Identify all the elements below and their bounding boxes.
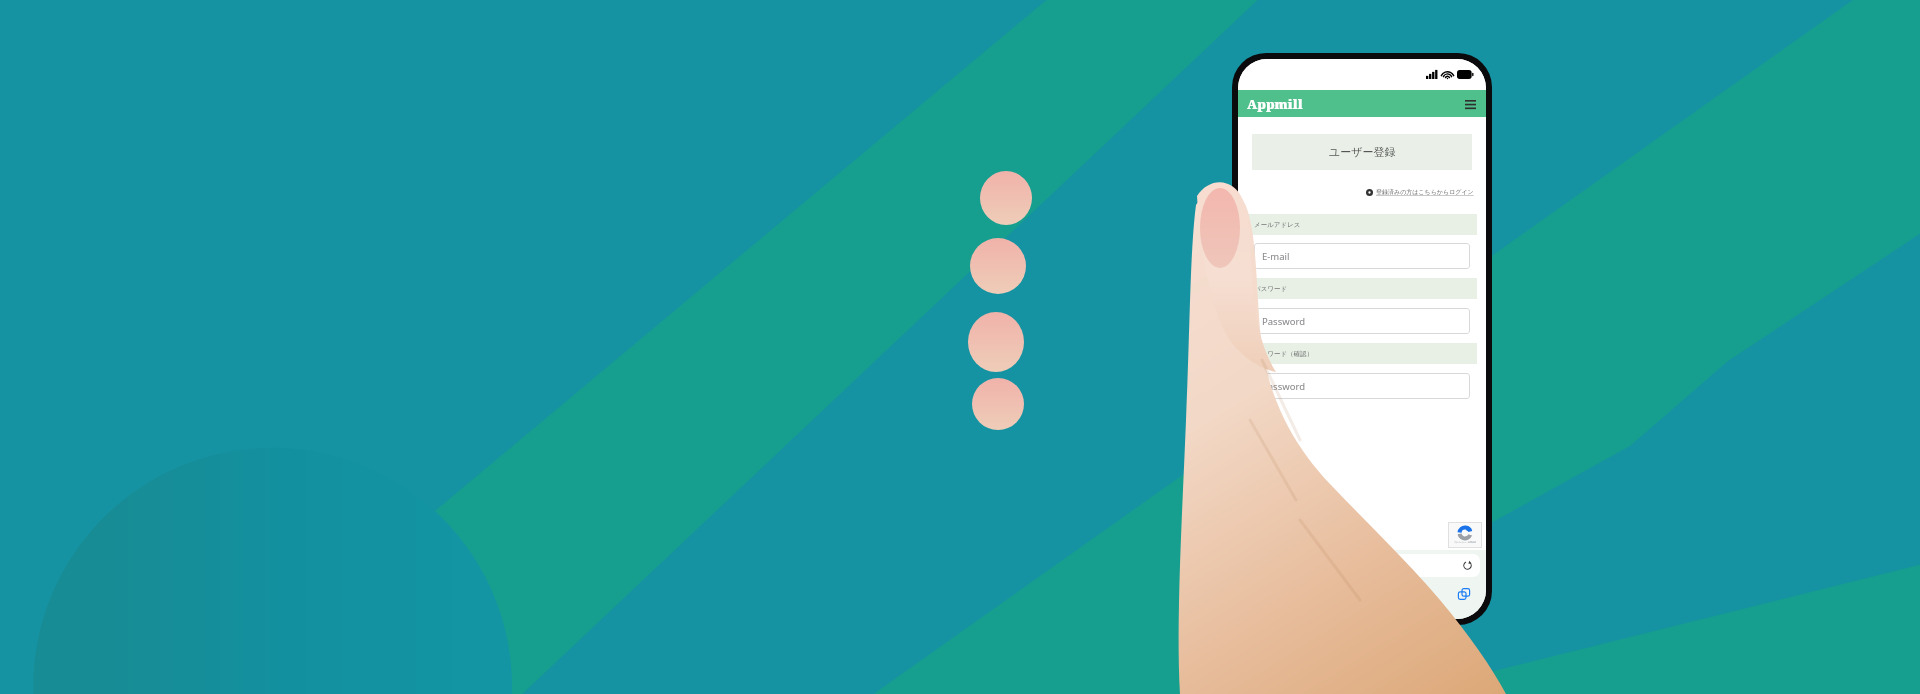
staticText: パスワード: [1254, 285, 1288, 293]
button[interactable]: Password: [1254, 308, 1470, 334]
button[interactable]: Menu: [1462, 96, 1478, 112]
button[interactable]: Password: [1254, 373, 1470, 399]
staticText: ユーザー登録: [1329, 145, 1396, 159]
staticText: メールアドレス: [1254, 221, 1301, 229]
button[interactable]: Tabs: [1452, 582, 1476, 606]
staticText: プライバシー - 利用規約: [1454, 541, 1476, 544]
button[interactable]: ぁあ: [1244, 554, 1480, 577]
button[interactable]: reCAPTCHA: [1448, 522, 1482, 548]
button[interactable]: Reload: [1462, 560, 1473, 571]
staticText: E-mail: [1262, 250, 1290, 263]
staticText: Password: [1262, 380, 1305, 393]
staticText: Password: [1262, 315, 1305, 328]
staticText: 登録済みの方はこちらからログイン: [1376, 188, 1474, 196]
button[interactable]: E-mail: [1254, 243, 1470, 269]
staticText: Appmill: [1247, 95, 1303, 113]
button[interactable]: 登録済みの方はこちらからログイン: [1238, 188, 1474, 196]
staticText: パスワード（確認）: [1254, 350, 1314, 358]
button[interactable]: Share: [1350, 582, 1374, 606]
